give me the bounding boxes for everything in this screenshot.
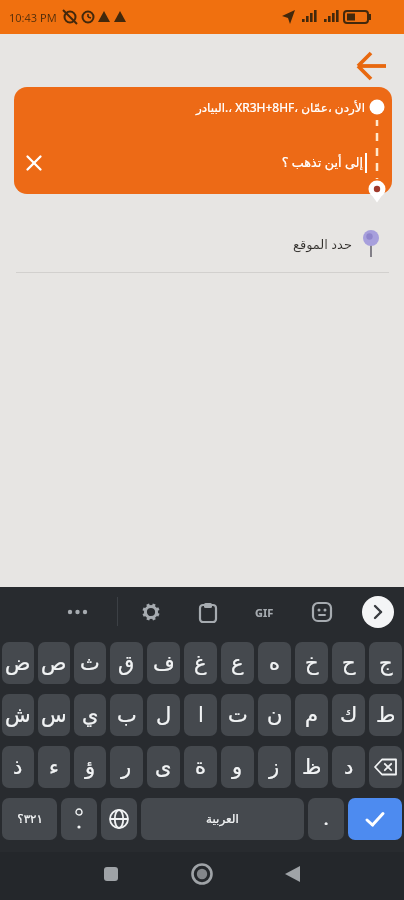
staticText: ذ [13,755,23,779]
button[interactable] [278,860,306,888]
button[interactable]: ا [184,694,217,736]
button[interactable]: الأردن ،عمّان ،XR3H+8HF ،.البيادر [14,87,392,194]
button[interactable]: . [308,798,344,840]
button[interactable]: ط [369,694,402,736]
staticText: ة [195,755,207,779]
button[interactable]: خ [295,642,328,684]
staticText: ى [155,755,172,779]
button[interactable]: حدد الموقع [0,219,404,269]
button[interactable]: ح [332,642,365,684]
staticText: ا [198,703,204,727]
button[interactable]: ش [2,694,34,736]
staticText: 10:43 PM [9,10,57,25]
button[interactable]: ص [38,642,70,684]
button[interactable]: ز [258,746,291,788]
staticText: ز [269,755,280,779]
staticText: ي [82,703,99,727]
button[interactable]: ك [332,694,365,736]
button[interactable]: و [221,746,254,788]
button[interactable] [348,46,396,86]
button[interactable]: س [38,694,70,736]
staticText: ن [267,703,283,727]
button[interactable]: ى [147,746,180,788]
staticText: غ [194,651,207,675]
staticText: م [305,703,319,727]
button[interactable]: ة [184,746,217,788]
staticText: GIF [255,605,274,620]
staticText: ف [153,651,175,675]
button[interactable]: ع [221,642,254,684]
staticText: . [324,809,329,829]
button[interactable]: ف [147,642,180,684]
staticText: ع [231,651,244,675]
staticText: العربية [206,812,239,826]
staticText: ض [5,651,31,675]
button[interactable]: ؤ [74,746,106,788]
button[interactable] [348,798,402,840]
staticText: ث [80,651,100,675]
button[interactable] [101,798,137,840]
button[interactable]: ث [74,642,106,684]
button[interactable]: غ [184,642,217,684]
button[interactable]: ق [110,642,143,684]
staticText: خ [305,651,319,675]
staticText: ب [117,703,137,727]
button[interactable] [61,798,97,840]
staticText: ؤ [85,755,96,779]
button[interactable]: ر [110,746,143,788]
button[interactable] [134,595,168,629]
button[interactable]: GIF [246,595,282,629]
button[interactable] [97,860,125,888]
staticText: ه [269,651,281,675]
button[interactable]: ض [2,642,34,684]
button[interactable]: ت [221,694,254,736]
button[interactable] [305,595,339,629]
button[interactable]: د [332,746,365,788]
staticText: ق [118,651,135,675]
button[interactable] [369,746,402,788]
staticText: ص [41,651,67,675]
staticText: الأردن ،عمّان ،XR3H+8HF ،.البيادر [195,99,365,115]
button[interactable]: ل [147,694,180,736]
button[interactable]: ن [258,694,291,736]
staticText: س [41,703,67,727]
staticText: ٣٢١؟ [17,812,43,826]
button[interactable] [58,598,98,626]
staticText: و [232,755,243,779]
button[interactable]: ٣٢١؟ [2,798,57,840]
staticText: ك [340,703,358,727]
staticText: ج [379,651,393,675]
staticText: ش [5,703,31,727]
button[interactable]: ب [110,694,143,736]
button[interactable]: ء [38,746,70,788]
button[interactable]: ج [369,642,402,684]
staticText: د [344,755,354,779]
staticText: ء [49,755,59,779]
button[interactable]: ذ [2,746,34,788]
staticText: ح [342,651,356,675]
staticText: حدد الموقع [293,235,352,253]
staticText: ظ [302,755,322,779]
button[interactable] [362,596,394,628]
staticText: إلى أين تذهب ؟ [281,153,363,170]
button[interactable]: العربية [141,798,304,840]
button[interactable] [191,595,225,629]
button[interactable]: م [295,694,328,736]
staticText: ط [376,703,396,727]
staticText: ل [156,703,172,727]
button[interactable] [188,860,216,888]
button[interactable]: ه [258,642,291,684]
button[interactable]: ظ [295,746,328,788]
staticText: ت [228,703,248,727]
staticText: ر [121,755,132,779]
button[interactable]: ي [74,694,106,736]
